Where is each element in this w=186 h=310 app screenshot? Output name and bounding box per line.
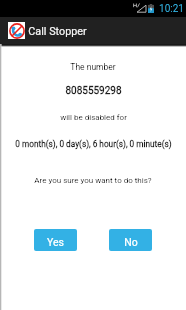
staticText: No: [124, 236, 138, 248]
staticText: Yes: [47, 236, 64, 248]
button[interactable]: Call Stopper app icon: [8, 22, 25, 39]
staticText: will be disabled for: [60, 113, 127, 122]
staticText: Are you sure you want to do this?: [34, 176, 152, 185]
button[interactable]: Yes: [34, 229, 77, 251]
button[interactable]: No: [109, 229, 152, 251]
staticText: 10:21: [159, 3, 184, 15]
staticText: 8085559298: [65, 85, 122, 97]
staticText: 0 month(s), 0 day(s), 6 hour(s), 0 minut…: [15, 139, 172, 149]
staticText: The number: [70, 62, 116, 72]
staticText: Call Stopper: [28, 25, 87, 38]
